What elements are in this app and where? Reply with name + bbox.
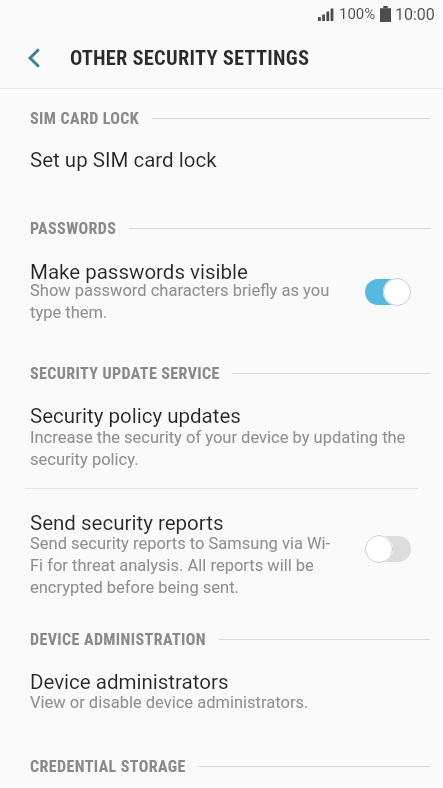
staticText: DEVICE ADMINISTRATION bbox=[30, 630, 207, 649]
button[interactable] bbox=[365, 535, 412, 563]
staticText: Make passwords visible bbox=[30, 260, 248, 284]
staticText: Security policy updates bbox=[30, 404, 241, 428]
staticText: 100% bbox=[339, 5, 376, 23]
staticText: 10:00 bbox=[395, 5, 435, 24]
button[interactable] bbox=[364, 278, 411, 306]
button[interactable] bbox=[0, 500, 443, 604]
staticText: SECURITY UPDATE SERVICE bbox=[30, 364, 220, 383]
staticText: View or disable device administrators. bbox=[30, 693, 309, 712]
button[interactable] bbox=[0, 395, 443, 481]
staticText: Increase the security of your device by … bbox=[30, 428, 406, 469]
staticText: Set up SIM card lock bbox=[30, 148, 217, 172]
button[interactable] bbox=[0, 134, 443, 187]
staticText: Send security reports bbox=[30, 511, 224, 535]
staticText: CREDENTIAL STORAGE bbox=[30, 757, 186, 776]
staticText: OTHER SECURITY SETTINGS bbox=[70, 46, 310, 70]
button[interactable] bbox=[16, 40, 52, 76]
button[interactable] bbox=[0, 658, 443, 724]
staticText: SIM CARD LOCK bbox=[30, 109, 140, 128]
staticText: PASSWORDS bbox=[30, 219, 117, 238]
staticText: Show password characters briefly as you … bbox=[30, 281, 330, 322]
staticText: Device administrators bbox=[30, 670, 229, 694]
staticText: Send security reports to Samsung via Wi-… bbox=[30, 534, 331, 597]
button[interactable] bbox=[0, 248, 443, 336]
